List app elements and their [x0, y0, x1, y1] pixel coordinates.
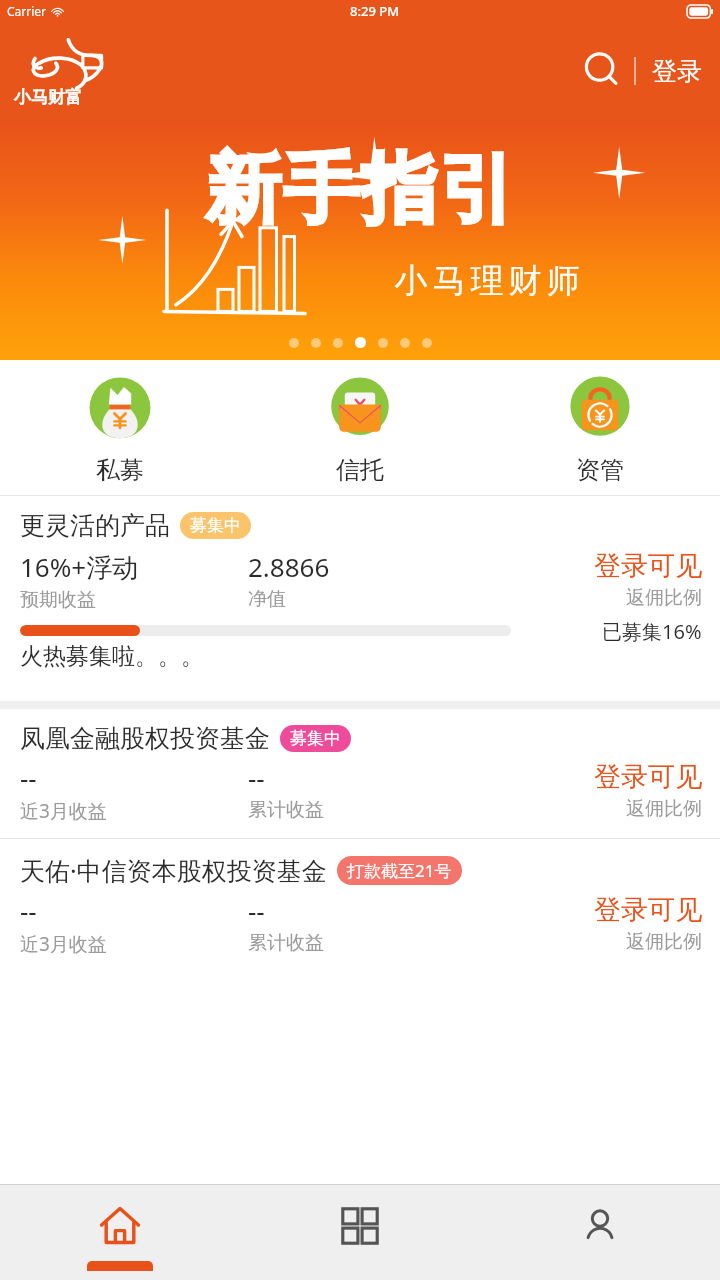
staticText: 净值: [248, 587, 286, 611]
staticText: 更灵活的产品: [20, 510, 170, 541]
staticText: 近3月收益: [20, 798, 107, 824]
staticText: 私募: [96, 455, 144, 485]
staticText: 募集中: [290, 728, 341, 749]
staticText: 累计收益: [248, 931, 324, 955]
staticText: 新手指引: [204, 142, 516, 238]
staticText: 近3月收益: [20, 931, 107, 957]
staticText: 登录可见: [594, 893, 702, 927]
button[interactable]: 登录: [650, 48, 704, 95]
staticText: 登录可见: [594, 760, 702, 794]
button[interactable]: 新手指引 banner: [0, 120, 720, 360]
staticText: --: [248, 893, 265, 928]
staticText: 募集中: [190, 515, 241, 536]
staticText: 凤凰金融股权投资基金: [20, 723, 270, 754]
button[interactable]: 凤凰金融股权投资基金: [0, 709, 720, 838]
staticText: 累计收益: [248, 798, 324, 822]
staticText: 天佑·中信资本股权投资基金: [20, 853, 327, 887]
staticText: --: [20, 760, 37, 795]
staticText: 已募集16%: [602, 618, 702, 645]
staticText: 2.8866: [248, 549, 330, 584]
staticText: --: [20, 893, 37, 928]
staticText: 火热募集啦。。。: [20, 642, 204, 671]
staticText: 资管: [576, 455, 624, 485]
button[interactable]: 私募: [0, 360, 240, 495]
button[interactable]: 更灵活的产品: [0, 496, 720, 701]
staticText: 返佣比例: [626, 586, 702, 610]
button[interactable]: Profile: [480, 1185, 720, 1280]
staticText: 登录: [652, 56, 702, 87]
button[interactable]: Home: [0, 1185, 240, 1280]
button[interactable]: 天佑·中信资本股权投资基金: [0, 839, 720, 971]
staticText: 打款截至21号: [347, 859, 452, 882]
staticText: 16%+浮动: [20, 549, 139, 585]
button[interactable]: Products: [240, 1185, 480, 1280]
staticText: Carrier: [7, 3, 47, 19]
staticText: --: [248, 760, 265, 795]
staticText: 返佣比例: [626, 930, 702, 954]
button[interactable]: Search: [576, 45, 628, 97]
button[interactable]: 资管: [480, 360, 720, 495]
staticText: 小马财富: [14, 87, 82, 108]
staticText: 登录可见: [594, 549, 702, 583]
staticText: 预期收益: [20, 588, 96, 612]
staticText: 信托: [336, 455, 384, 485]
staticText: 返佣比例: [626, 797, 702, 821]
staticText: 小马理财师: [392, 260, 582, 302]
staticText: 8:29 PM: [350, 2, 400, 20]
button[interactable]: 小马财富 logo: [8, 32, 112, 110]
button[interactable]: 信托: [240, 360, 480, 495]
